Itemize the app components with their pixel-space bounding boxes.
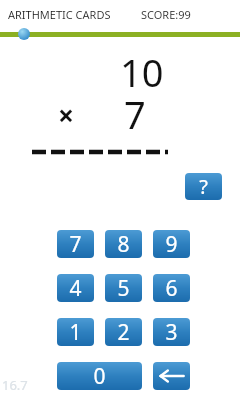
staticText: ARITHMETIC CARDS xyxy=(8,7,111,22)
button[interactable]: Backspace xyxy=(153,362,190,390)
staticText: 1 xyxy=(69,318,82,346)
staticText: 5 xyxy=(117,274,130,302)
button[interactable]: 2 xyxy=(105,318,142,346)
staticText: 9 xyxy=(165,230,178,258)
button[interactable]: 8 xyxy=(105,230,142,258)
button[interactable]: 1 xyxy=(57,318,94,346)
staticText: 2 xyxy=(117,318,130,346)
staticText: 3 xyxy=(165,318,178,346)
button[interactable]: 4 xyxy=(57,274,94,302)
staticText: 8 xyxy=(117,230,130,258)
button[interactable]: 9 xyxy=(153,230,190,258)
button[interactable]: 5 xyxy=(105,274,142,302)
staticText: 10 xyxy=(120,46,164,98)
staticText: × xyxy=(58,96,75,134)
button[interactable]: 3 xyxy=(153,318,190,346)
button[interactable]: Difficulty slider xyxy=(0,28,240,40)
staticText: 7 xyxy=(69,230,82,258)
staticText: SCORE:99 xyxy=(141,7,191,22)
staticText: 4 xyxy=(69,274,82,302)
staticText: 16.7 xyxy=(2,376,28,394)
button[interactable]: 6 xyxy=(153,274,190,302)
button[interactable]: 7 xyxy=(57,230,94,258)
staticText: ? xyxy=(199,173,208,200)
button[interactable]: 0 xyxy=(57,362,142,390)
button[interactable]: Show answer xyxy=(185,173,222,200)
staticText: 0 xyxy=(93,362,106,390)
staticText: 7 xyxy=(124,88,146,140)
staticText: 6 xyxy=(165,274,178,302)
